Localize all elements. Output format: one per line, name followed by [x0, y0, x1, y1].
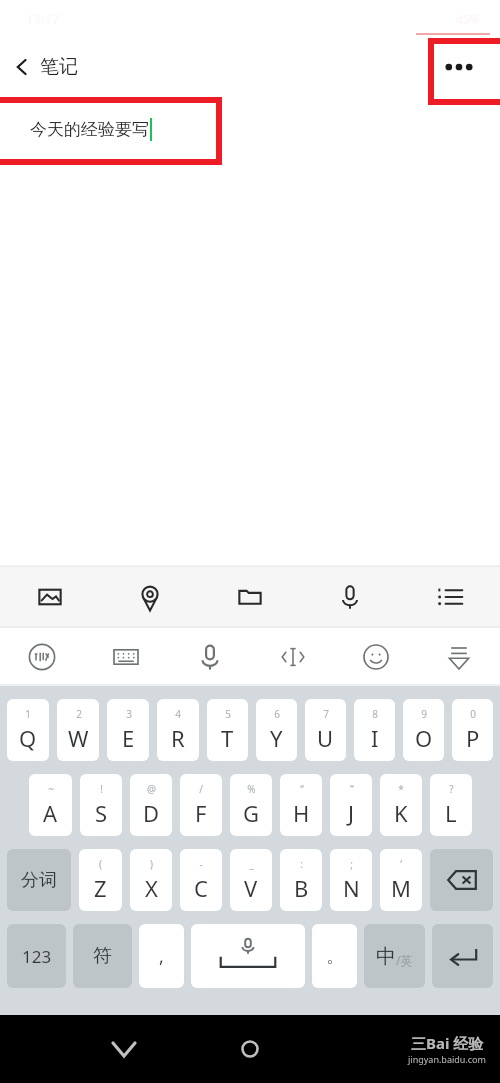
staticText: N	[343, 873, 360, 903]
button[interactable]: ~	[29, 774, 72, 836]
button[interactable]: ?	[430, 774, 472, 836]
button[interactable]: Input method	[0, 628, 84, 686]
button[interactable]: 分词	[7, 849, 71, 911]
button[interactable]: Hide keyboard	[417, 628, 500, 686]
button[interactable]: ,	[139, 924, 184, 988]
button[interactable]: 7	[305, 699, 346, 761]
button[interactable]: 123	[7, 924, 66, 988]
button[interactable]: _	[230, 849, 272, 911]
staticText: %	[247, 782, 256, 796]
staticText: 。	[326, 945, 344, 968]
staticText: “	[300, 782, 304, 796]
staticText: 2	[76, 707, 82, 721]
staticText: V	[244, 873, 258, 903]
staticText: 9	[421, 707, 427, 721]
button[interactable]: 9	[403, 699, 444, 761]
staticText: 符	[93, 944, 112, 968]
staticText: *	[398, 782, 404, 796]
button[interactable]: Keyboard layout	[84, 628, 168, 686]
staticText: /	[199, 782, 203, 796]
staticText: P	[466, 723, 480, 753]
staticText: )	[150, 857, 153, 871]
staticText: G	[243, 798, 260, 828]
button[interactable]: “	[280, 774, 322, 836]
staticText: U	[317, 723, 334, 753]
button[interactable]: Back	[0, 49, 88, 85]
button[interactable]: 2	[57, 699, 99, 761]
button[interactable]: Move cursor	[251, 628, 334, 686]
staticText: -	[199, 857, 203, 871]
button[interactable]: Voice input	[168, 628, 251, 686]
button[interactable]: -	[180, 849, 222, 911]
button[interactable]: 符	[73, 924, 132, 988]
other: Back	[14, 56, 30, 78]
button[interactable]: More options	[436, 47, 482, 87]
staticText: 中	[376, 944, 396, 969]
staticText: T	[221, 723, 234, 753]
staticText: 6	[274, 707, 280, 721]
button[interactable]: ;	[330, 849, 372, 911]
button[interactable]: Insert image	[0, 566, 100, 628]
button[interactable]: ”	[330, 774, 372, 836]
button[interactable]: 8	[354, 699, 395, 761]
staticText: F	[195, 798, 207, 828]
staticText: Y	[270, 723, 283, 753]
staticText: X	[145, 873, 158, 903]
button[interactable]: Voice input	[300, 566, 400, 628]
button[interactable]: Insert file	[200, 566, 300, 628]
button[interactable]: 。	[312, 924, 357, 988]
button[interactable]: !	[80, 774, 122, 836]
button[interactable]: Backspace	[430, 849, 493, 911]
staticText: Z	[94, 873, 107, 903]
staticText: 7	[323, 707, 329, 721]
button[interactable]: Home	[226, 1025, 274, 1073]
staticText: C	[194, 873, 208, 903]
staticText: B	[294, 873, 309, 903]
staticText: 0	[470, 707, 476, 721]
staticText: 3	[126, 707, 132, 721]
staticText: D	[143, 798, 160, 828]
button[interactable]: 今天的经验要写	[0, 96, 500, 162]
staticText: E	[122, 723, 135, 753]
button[interactable]: )	[130, 849, 172, 911]
button[interactable]: 0	[452, 699, 493, 761]
staticText: (	[99, 857, 102, 871]
button[interactable]: :	[280, 849, 322, 911]
staticText: :	[300, 857, 303, 871]
button[interactable]: 5	[207, 699, 248, 761]
staticText: 分词	[21, 869, 57, 892]
button[interactable]: 中	[364, 924, 425, 988]
staticText: W	[68, 723, 89, 753]
button[interactable]: Numbered list	[400, 566, 500, 628]
button[interactable]: (	[79, 849, 122, 911]
staticText: 4	[175, 707, 181, 721]
button[interactable]: 6	[256, 699, 297, 761]
staticText: /英	[396, 952, 413, 968]
button[interactable]: Enter	[432, 924, 493, 988]
staticText: _	[249, 857, 254, 871]
button[interactable]: 4	[157, 699, 199, 761]
button[interactable]: *	[380, 774, 422, 836]
staticText: K	[394, 798, 408, 828]
staticText: 三Bai 经验	[411, 1033, 484, 1053]
button[interactable]: @	[130, 774, 172, 836]
button[interactable]: Space	[191, 924, 305, 988]
staticText: ?	[449, 782, 454, 796]
button[interactable]: Hide keyboard	[100, 1025, 148, 1073]
staticText: ,	[159, 944, 164, 969]
staticText: !	[100, 782, 103, 796]
button[interactable]: Emoji	[334, 628, 417, 686]
staticText: jingyan.baidu.com	[408, 1053, 486, 1065]
button[interactable]: /	[180, 774, 222, 836]
button[interactable]: 1	[7, 699, 49, 761]
button[interactable]: %	[230, 774, 272, 836]
staticText: @	[147, 782, 156, 796]
staticText: S	[95, 798, 108, 828]
staticText: R	[171, 723, 185, 753]
button[interactable]: ‘	[380, 849, 422, 911]
staticText: ~	[48, 782, 54, 796]
button[interactable]: 3	[107, 699, 149, 761]
button[interactable]: Insert location	[100, 566, 200, 628]
staticText: O	[415, 723, 433, 753]
